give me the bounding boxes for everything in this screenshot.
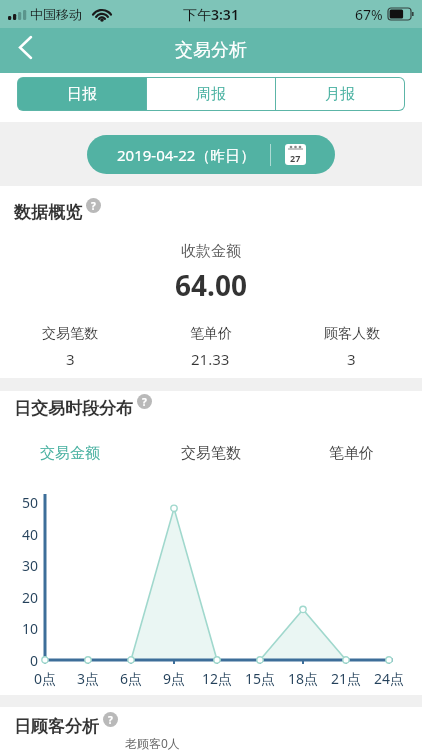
- staticText: 2019-04-22（昨日）: [117, 145, 256, 165]
- staticText: 20: [0, 588, 38, 607]
- staticText: 21点: [321, 669, 371, 688]
- staticText: 18点: [278, 669, 328, 688]
- staticText: 10: [0, 619, 38, 638]
- button[interactable]: 交易笔数: [140, 441, 281, 465]
- staticText: 24点: [364, 669, 414, 688]
- staticText: 交易金额: [40, 444, 100, 463]
- staticText: 3点: [63, 669, 113, 688]
- staticText: 27: [290, 152, 301, 164]
- staticText: 日报: [67, 85, 97, 104]
- staticText: 老顾客0人: [125, 735, 180, 750]
- staticText: 日顾客分析: [14, 716, 99, 737]
- staticText: ?: [91, 199, 96, 213]
- staticText: 交易分析: [0, 39, 422, 62]
- staticText: 日交易时段分布: [14, 398, 133, 419]
- button[interactable]: 周报: [147, 78, 275, 110]
- staticText: ?: [142, 395, 147, 409]
- staticText: 9点: [149, 669, 199, 688]
- staticText: 50: [0, 493, 38, 512]
- staticText: 周报: [196, 85, 226, 104]
- button[interactable]: 月报: [276, 78, 404, 110]
- staticText: 3: [347, 349, 356, 369]
- button[interactable]: 2019-04-22（昨日）: [87, 135, 335, 174]
- staticText: 数据概览: [14, 202, 82, 223]
- staticText: 中国移动: [30, 6, 82, 22]
- button[interactable]: [0, 28, 49, 73]
- button[interactable]: 笔单价: [281, 441, 422, 465]
- staticText: 67%: [355, 5, 383, 24]
- staticText: ?: [108, 713, 113, 727]
- staticText: 笔单价: [190, 325, 232, 343]
- staticText: 6点: [106, 669, 156, 688]
- button[interactable]: 交易金额: [0, 441, 140, 465]
- staticText: 64.00: [0, 266, 422, 304]
- staticText: 15点: [235, 669, 285, 688]
- staticText: 交易笔数: [181, 444, 241, 463]
- staticText: 0: [0, 651, 38, 670]
- staticText: 交易笔数: [42, 325, 98, 343]
- staticText: 月报: [325, 85, 355, 104]
- staticText: 3: [66, 349, 75, 369]
- staticText: 笔单价: [329, 444, 374, 463]
- staticText: 下午3:31: [183, 5, 239, 24]
- staticText: 顾客人数: [324, 325, 380, 343]
- staticText: 40: [0, 525, 38, 544]
- staticText: 0点: [20, 669, 70, 688]
- staticText: 30: [0, 556, 38, 575]
- button[interactable]: 日报: [18, 78, 146, 110]
- staticText: 12点: [192, 669, 242, 688]
- staticText: 收款金额: [0, 242, 422, 261]
- staticText: 21.33: [191, 349, 230, 369]
